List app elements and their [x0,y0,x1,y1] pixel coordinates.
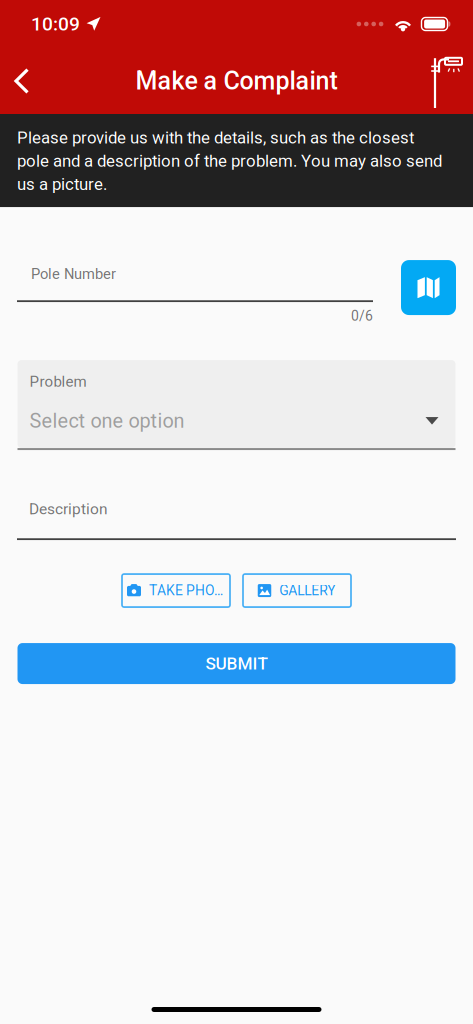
staticText: SUBMIT [205,653,267,674]
staticText: Problem [29,373,86,390]
staticText: Pole Number [31,265,116,283]
staticText: 0/6 [351,308,373,324]
button[interactable]: GALLERY [243,574,351,607]
staticText: Please provide us with the details, such… [17,128,442,194]
button[interactable]: SUBMIT [17,643,455,684]
button[interactable]: TAKE PHOTO [122,574,230,607]
staticText: Make a Complaint [135,66,337,96]
button[interactable]: Pick location on map [401,260,456,315]
staticText: 10:09 [31,13,80,35]
staticText: Select one option [29,409,184,433]
staticText: Description [29,500,108,518]
staticText: TAKE PHOTO [149,582,225,599]
button[interactable]: Problem [17,360,455,450]
staticText: GALLERY [279,582,335,599]
button[interactable]: Back [14,48,66,114]
